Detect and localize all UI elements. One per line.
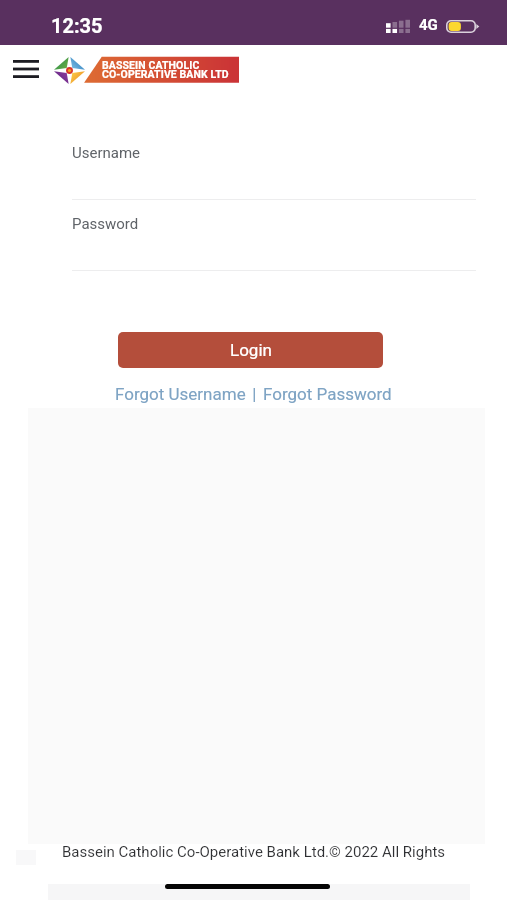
button[interactable]: Forgot Username (115, 384, 246, 404)
button[interactable]: Forgot Password (263, 384, 392, 404)
staticText: Login (230, 340, 272, 360)
staticText: Bassein Catholic Co-Operative Bank Ltd.©… (0, 843, 507, 861)
button[interactable]: Login (118, 332, 383, 368)
button[interactable]: Open navigation menu (3, 46, 49, 92)
button[interactable]: Username (72, 144, 476, 201)
staticText: 4G (419, 16, 438, 34)
staticText: | (248, 384, 261, 404)
staticText: 12:35 (51, 14, 103, 37)
staticText: Forgot Password (263, 384, 392, 404)
staticText: Forgot Username (115, 384, 246, 404)
staticText: Username (72, 144, 141, 162)
staticText: CO-OPERATIVE BANK LTD (102, 68, 229, 80)
staticText: BASSEIN CATHOLIC (102, 59, 200, 71)
button[interactable]: Password (72, 215, 476, 272)
staticText: Password (72, 215, 139, 233)
